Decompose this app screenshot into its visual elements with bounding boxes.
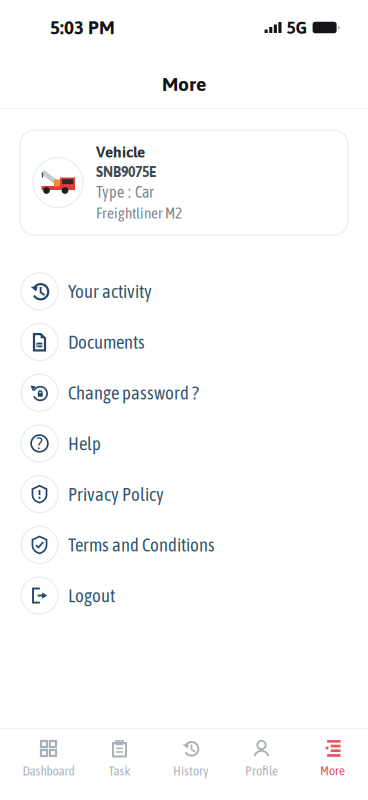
staticText: Terms and Conditions [68,534,215,556]
staticText: Change password ? [68,382,199,403]
button[interactable]: Task [84,728,155,800]
staticText: More [162,73,206,95]
button[interactable]: Terms and Conditions [0,519,368,570]
button[interactable]: Profile [226,728,297,800]
button[interactable]: Logout [0,570,368,621]
button[interactable]: Dashboard [13,728,84,800]
staticText: ? [36,434,42,453]
staticText: More [320,763,345,778]
staticText: Documents [68,331,145,353]
staticText: History [173,763,208,778]
staticText: Your activity [68,281,152,302]
button[interactable]: Documents [0,317,368,367]
staticText: Privacy Policy [68,483,164,505]
staticText: 5:03 PM [50,17,115,38]
button[interactable]: Privacy Policy [0,469,368,519]
staticText: Type : Car [96,183,154,201]
staticText: SNB9075E [96,164,157,180]
button[interactable]: Change password ? [0,367,368,418]
button[interactable]: History [155,728,226,800]
staticText: Logout [68,585,115,606]
staticText: Freightliner M2 [96,204,182,222]
staticText: 5G [287,18,308,37]
staticText: Help [68,433,101,454]
button[interactable]: ? [0,418,368,469]
button[interactable]: Your activity [0,266,368,317]
staticText: Task [108,763,130,778]
staticText: Dashboard [22,763,74,778]
staticText: Profile [245,763,278,778]
button[interactable]: More [297,728,368,800]
staticText: Vehicle [96,143,145,161]
